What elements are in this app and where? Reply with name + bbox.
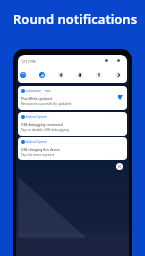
button[interactable]: Bluetooth: [58, 72, 64, 78]
staticText: Plus White updated: [21, 96, 52, 100]
staticText: Resources successfully updated: [21, 101, 72, 106]
button[interactable]: Wi-Fi: [20, 72, 26, 78]
button[interactable]: Do not disturb: [115, 72, 121, 78]
button[interactable]: Android System: [18, 112, 127, 136]
staticText: Round notifications: [13, 10, 138, 28]
staticText: USB charging this device: [21, 147, 60, 151]
button[interactable]: substratum · now: [18, 86, 127, 110]
staticText: Tap for more options: [21, 152, 55, 157]
staticText: Android System: [26, 115, 47, 119]
staticText: substratum · now: [26, 89, 51, 93]
staticText: USB debugging connected: [21, 122, 63, 126]
button[interactable]: Android System: [18, 137, 127, 160]
button[interactable]: Battery saver: [77, 72, 83, 78]
button[interactable]: Flashlight: [96, 72, 102, 78]
button[interactable]: Clear all notifications: [116, 163, 123, 170]
button[interactable]: Mobile data: [39, 72, 45, 78]
staticText: 12:12 PM: [21, 59, 36, 64]
staticText: Android System: [26, 140, 47, 144]
staticText: Tap to disable USB debugging: [21, 127, 69, 132]
